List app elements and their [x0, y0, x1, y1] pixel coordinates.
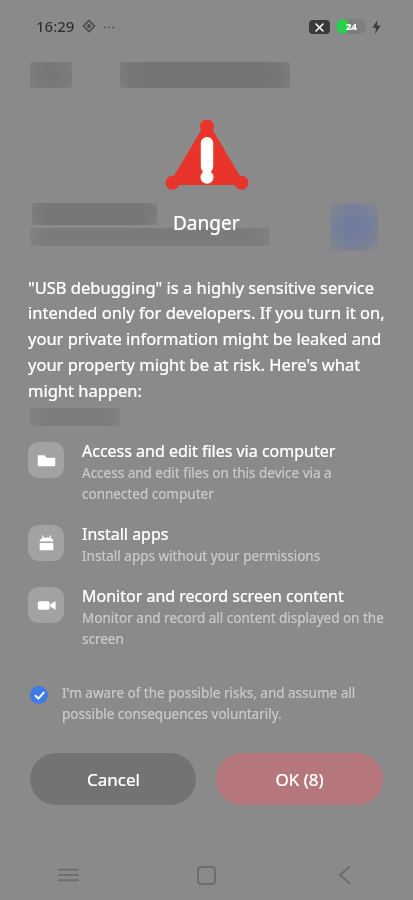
- button[interactable]: OK (8): [216, 753, 383, 805]
- staticText: Monitor and record screen content: [82, 585, 344, 607]
- button[interactable]: I'm aware of the possible risks, and ass…: [0, 680, 413, 727]
- staticText: Cancel: [87, 768, 140, 791]
- staticText: Access and edit files on this device via…: [82, 464, 385, 503]
- button[interactable]: Recent apps: [0, 850, 137, 900]
- button[interactable]: Access and edit files via computer: [0, 440, 413, 507]
- staticText: Install apps without your permissions: [82, 547, 321, 565]
- staticText: 16:29: [36, 16, 75, 36]
- button[interactable]: Install apps: [0, 523, 413, 569]
- staticText: Access and edit files via computer: [82, 440, 336, 462]
- button[interactable]: Home: [137, 850, 275, 900]
- staticText: Danger: [173, 210, 240, 236]
- staticText: Monitor and record all content displayed…: [82, 609, 385, 648]
- staticText: OK (8): [275, 768, 324, 791]
- staticText: 24: [346, 20, 357, 33]
- staticText: "USB debugging" is a highly sensitive se…: [28, 276, 385, 402]
- button[interactable]: Cancel: [30, 753, 196, 805]
- staticText: I'm aware of the possible risks, and ass…: [62, 684, 385, 723]
- button[interactable]: Monitor and record screen content: [0, 585, 413, 652]
- staticText: Install apps: [82, 523, 169, 545]
